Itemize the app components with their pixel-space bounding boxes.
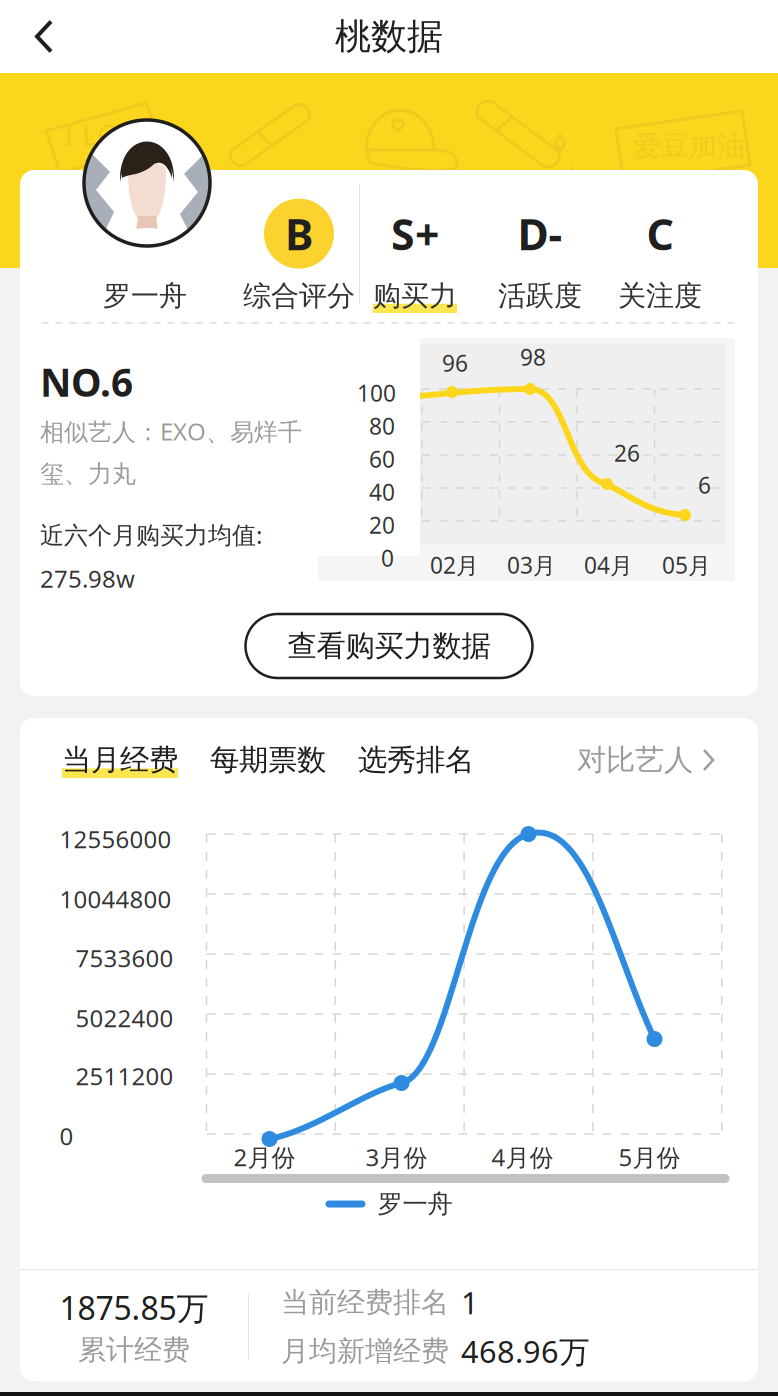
staticText: 桃数据 — [335, 14, 443, 59]
staticText: 罗一舟 — [377, 1188, 452, 1220]
staticText: 2511200 — [75, 1060, 173, 1092]
staticText: 98 — [520, 342, 546, 372]
button[interactable]: 每期票数 — [178, 742, 326, 778]
staticText: 累计经费 — [78, 1333, 190, 1367]
staticText: 5022400 — [75, 1002, 173, 1034]
staticText: 查看购买力数据 — [287, 628, 490, 664]
staticText: 03月 — [507, 550, 556, 580]
button[interactable]: 选秀排名 — [326, 742, 474, 778]
staticText: 80 — [369, 411, 395, 441]
staticText: 468.96万 — [461, 1331, 590, 1371]
staticText: 1875.85万 — [59, 1286, 208, 1329]
staticText: 购买力 — [373, 279, 457, 313]
staticText: 活跃度 — [498, 279, 582, 313]
staticText: 1 — [461, 1282, 479, 1323]
staticText: B — [285, 205, 313, 262]
staticText: S+ — [391, 205, 439, 262]
staticText: 10044800 — [59, 883, 171, 915]
staticText: 6 — [698, 470, 711, 500]
staticText: 选秀排名 — [358, 742, 474, 778]
staticText: 26 — [614, 438, 640, 468]
staticText: 当前经费排名 — [281, 1285, 449, 1320]
staticText: C — [646, 205, 673, 262]
staticText: 当月经费 — [62, 742, 178, 778]
staticText: 5月份 — [618, 1141, 680, 1173]
staticText: 每期票数 — [210, 742, 326, 778]
button[interactable]: 当月经费 — [62, 742, 178, 778]
staticText: 玺、力丸 — [40, 459, 136, 489]
staticText: 96 — [442, 348, 468, 378]
staticText: NO.6 — [40, 356, 133, 407]
staticText: 04月 — [584, 550, 633, 580]
staticText: 2月份 — [233, 1141, 295, 1173]
staticText: 关注度 — [618, 279, 702, 313]
staticText: 综合评分 — [243, 279, 355, 313]
staticText: 12556000 — [59, 823, 171, 855]
staticText: I LOVE — [64, 115, 154, 154]
staticText: 7533600 — [75, 942, 173, 974]
staticText: 05月 — [662, 550, 711, 580]
staticText: 月均新增经费 — [281, 1334, 449, 1368]
staticText: 爱豆加油 — [633, 129, 745, 163]
staticText: 40 — [369, 477, 395, 507]
button[interactable]: D- — [470, 166, 610, 318]
staticText: 0 — [381, 543, 394, 573]
staticText: 20 — [369, 510, 395, 540]
button[interactable]: 查看购买力数据 — [245, 614, 532, 678]
button[interactable]: C — [610, 166, 710, 318]
staticText: 60 — [369, 444, 395, 474]
staticText: 275.98w — [40, 563, 135, 594]
staticText: 02月 — [430, 550, 479, 580]
staticText: 相似艺人：EXO、易烊千 — [40, 415, 302, 447]
staticText: 3月份 — [365, 1141, 427, 1173]
staticText: 100 — [357, 378, 396, 408]
button[interactable]: 对比艺人 — [577, 742, 716, 778]
staticText: 罗一舟 — [103, 279, 187, 313]
staticText: 近六个月购买力均值: — [40, 519, 262, 551]
staticText: D- — [517, 205, 562, 262]
staticText: 0 — [59, 1120, 73, 1152]
staticText: 4月份 — [491, 1141, 553, 1173]
button[interactable]: S+ — [360, 166, 470, 318]
staticText: 对比艺人 — [577, 742, 693, 778]
button[interactable]: Back — [0, 0, 82, 73]
button[interactable]: B — [239, 166, 359, 318]
